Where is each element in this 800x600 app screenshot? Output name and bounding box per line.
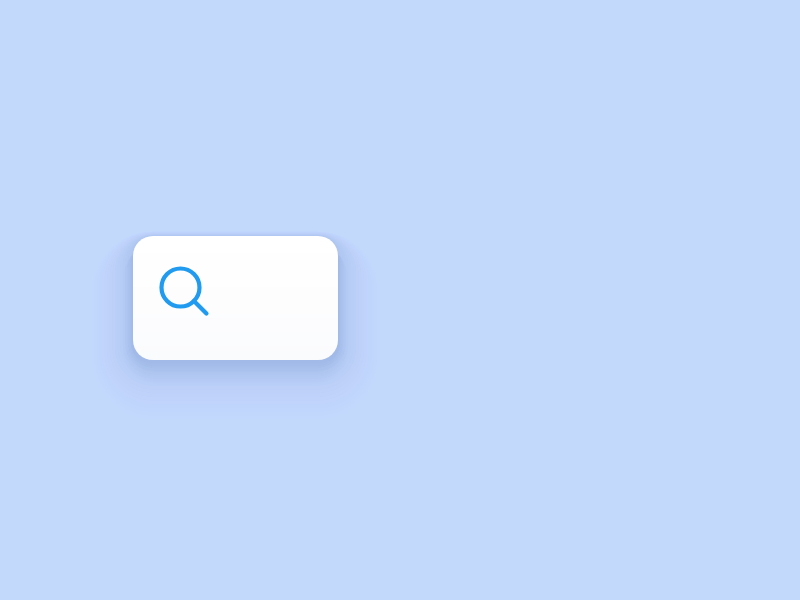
button[interactable]: Search [133,236,338,360]
